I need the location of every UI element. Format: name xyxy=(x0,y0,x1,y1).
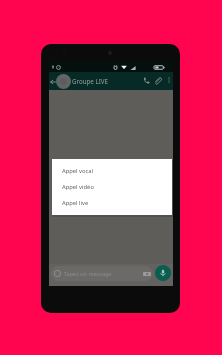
button[interactable]: Group avatar xyxy=(56,74,71,89)
button[interactable]: Voice call xyxy=(141,75,152,86)
staticText: Tapez un message xyxy=(64,270,112,277)
button[interactable]: Appel vocal xyxy=(52,163,172,179)
button[interactable]: More options xyxy=(164,75,174,85)
staticText: Appel vocal xyxy=(62,167,94,175)
button[interactable]: Attach xyxy=(152,75,163,86)
staticText: Groupe LIVE xyxy=(72,77,108,85)
button[interactable]: Record voice message xyxy=(155,265,171,281)
staticText: Appel live xyxy=(62,199,89,207)
button[interactable]: Appel live xyxy=(52,195,172,211)
staticText: Appel vidéo xyxy=(62,183,94,191)
button[interactable]: Tapez un message xyxy=(51,266,153,281)
button[interactable]: Appel vidéo xyxy=(52,179,172,195)
button[interactable]: Back xyxy=(48,77,57,86)
